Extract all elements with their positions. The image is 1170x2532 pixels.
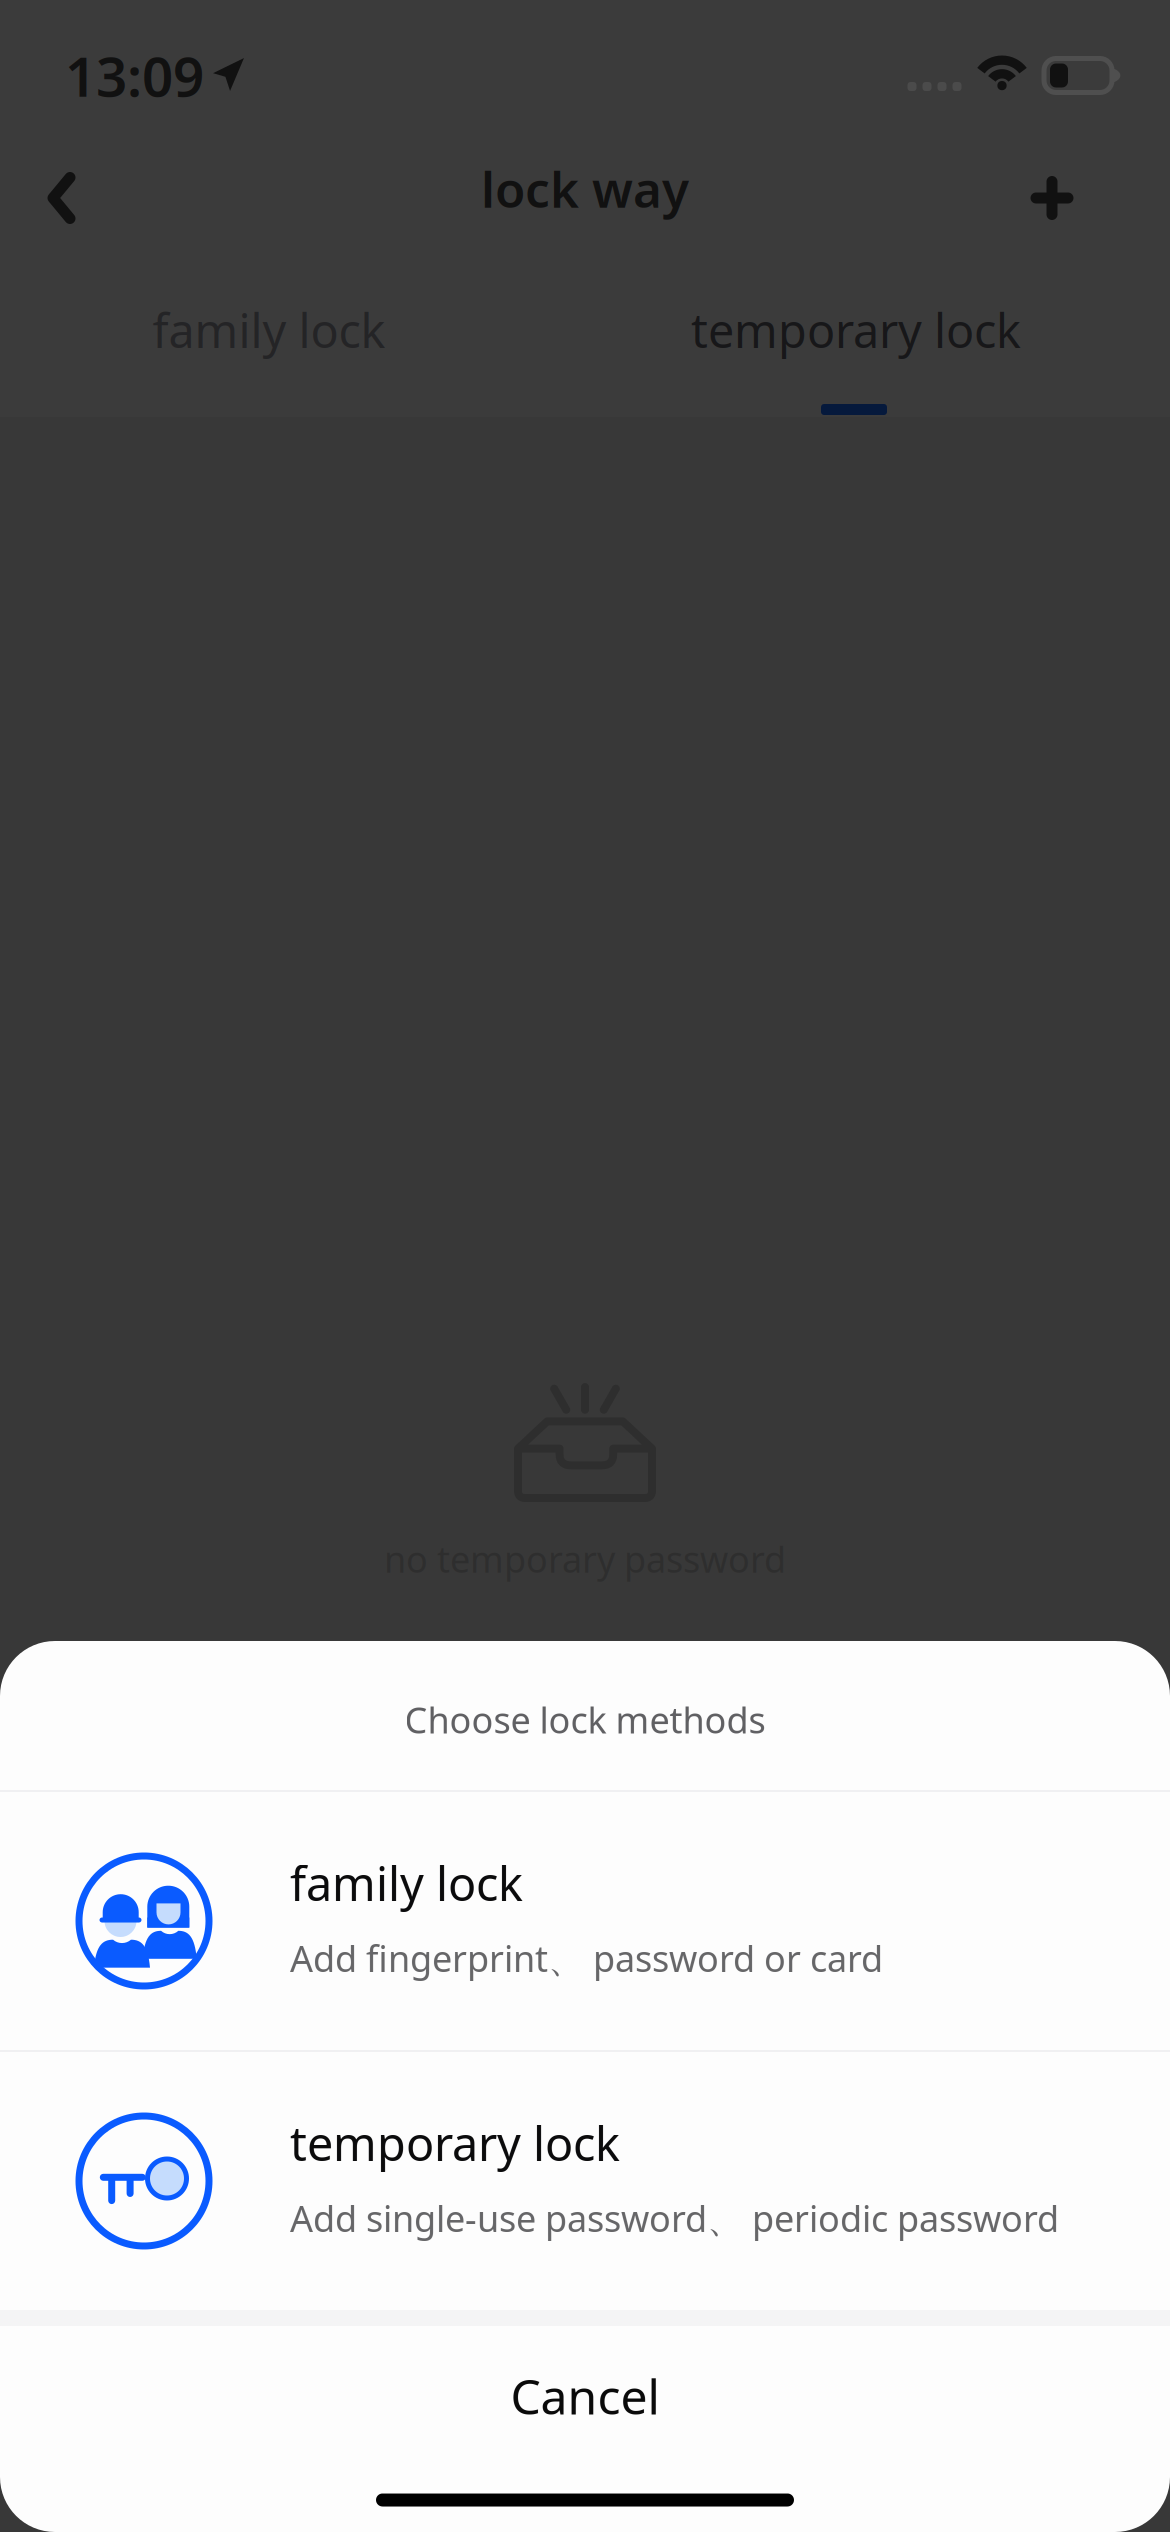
staticText: family lock — [152, 299, 385, 361]
button[interactable]: Back — [0, 137, 119, 237]
button[interactable]: Add — [987, 137, 1170, 237]
staticText: Add fingerprint、 password or card — [290, 1934, 883, 1982]
staticText: family lock — [290, 1852, 523, 1914]
staticText: no temporary password — [384, 1535, 786, 1583]
staticText: Cancel — [510, 2364, 659, 2428]
staticText: lock way — [481, 156, 689, 221]
staticText: Choose lock methods — [404, 1696, 765, 1743]
button[interactable]: Cancel — [0, 2326, 1170, 2466]
button[interactable]: family lock — [0, 1792, 1170, 2050]
staticText: 13:09 — [65, 39, 204, 112]
button[interactable]: temporary lock — [0, 2052, 1170, 2310]
staticText: temporary lock — [290, 2112, 620, 2174]
button[interactable]: family lock — [34, 270, 504, 390]
staticText: temporary lock — [691, 299, 1021, 361]
staticText: Add single-use password、 periodic passwo… — [290, 2194, 1059, 2242]
button[interactable]: temporary lock — [621, 270, 1091, 390]
